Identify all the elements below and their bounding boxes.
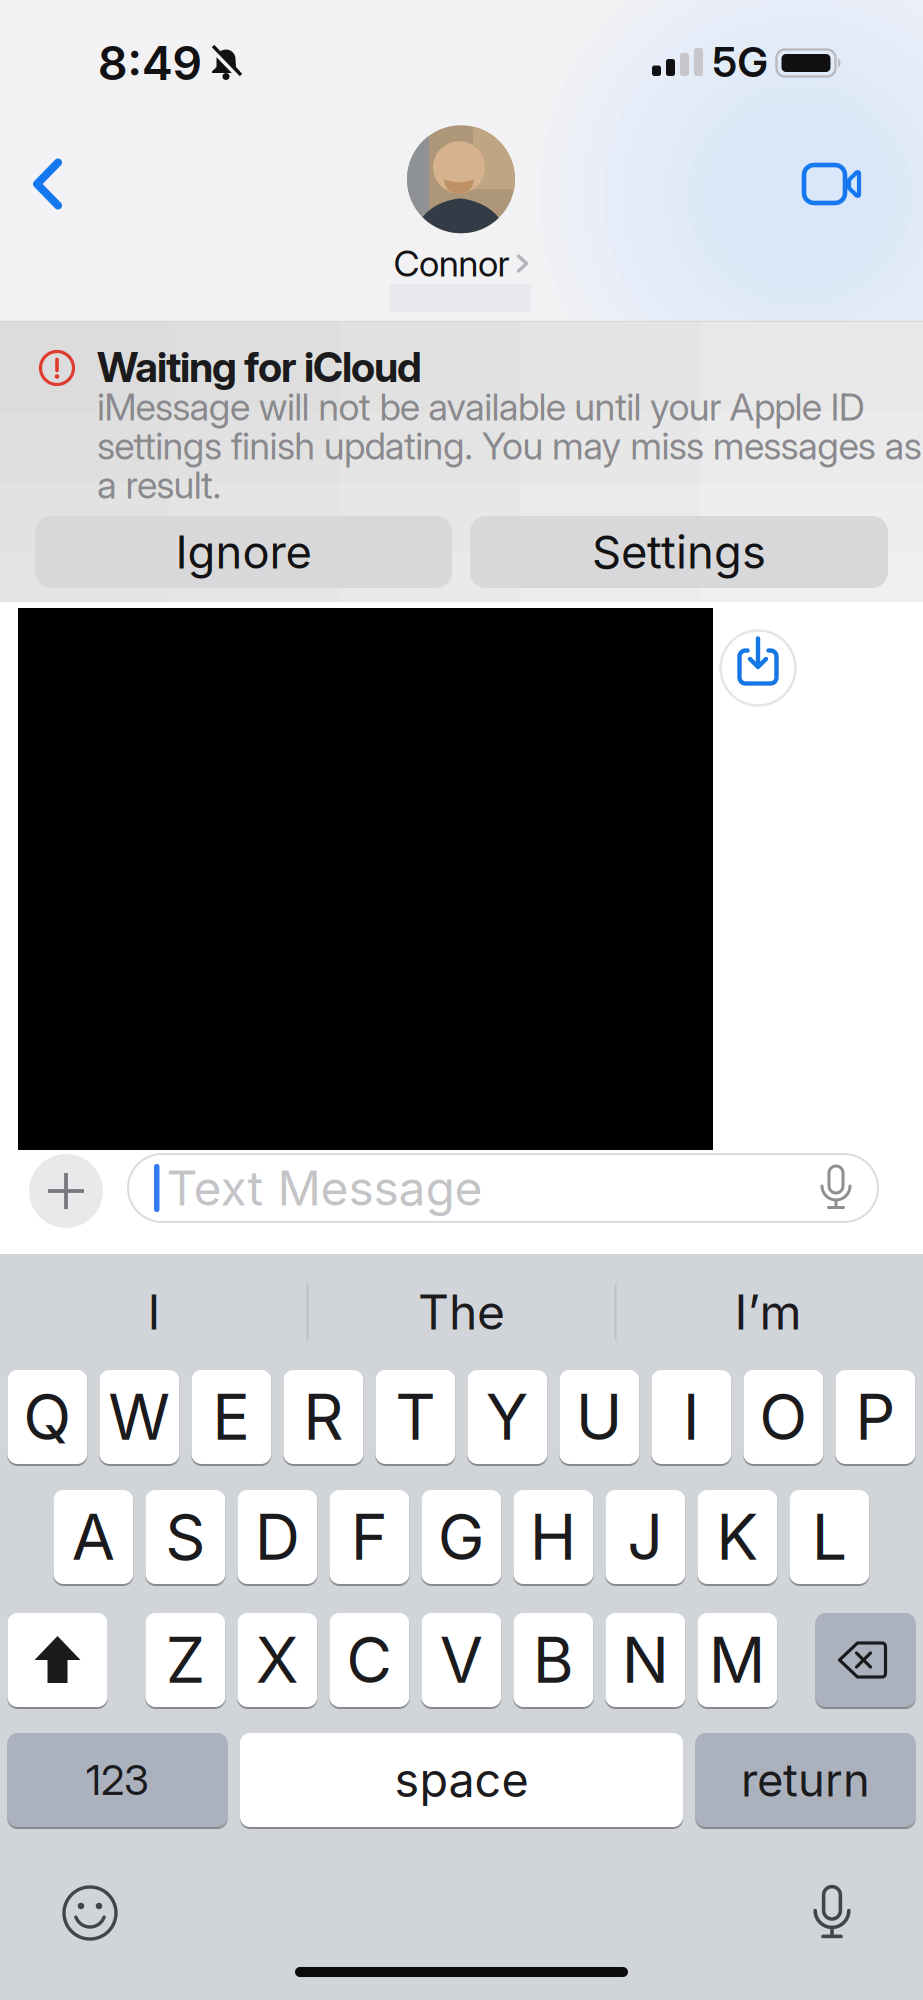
- staticText: I: [683, 1380, 700, 1454]
- button[interactable]: H: [513, 1490, 593, 1584]
- button[interactable]: Z: [145, 1613, 225, 1707]
- button[interactable]: Dictation: [812, 1885, 852, 1941]
- staticText: C: [346, 1623, 392, 1697]
- staticText: S: [165, 1500, 205, 1574]
- staticText: B: [533, 1623, 574, 1697]
- staticText: I: [147, 1284, 160, 1340]
- staticText: return: [741, 1753, 870, 1807]
- button[interactable]: Delete: [815, 1613, 915, 1707]
- button[interactable]: FaceTime: [802, 163, 862, 205]
- staticText: K: [716, 1500, 758, 1574]
- staticText: Z: [166, 1623, 205, 1697]
- staticText: Waiting for iCloud: [97, 343, 422, 391]
- staticText: L: [812, 1500, 847, 1574]
- button[interactable]: space: [240, 1733, 683, 1827]
- staticText: T: [395, 1380, 435, 1454]
- button[interactable]: F: [329, 1490, 409, 1584]
- staticText: 5G: [712, 38, 767, 86]
- button[interactable]: Add attachment: [29, 1154, 103, 1228]
- button[interactable]: Back: [32, 157, 64, 210]
- staticText: 123: [86, 1756, 149, 1804]
- button[interactable]: 123: [7, 1733, 227, 1827]
- staticText: R: [303, 1380, 343, 1454]
- button[interactable]: C: [329, 1613, 409, 1707]
- staticText: V: [440, 1623, 483, 1697]
- staticText: iMessage will not be available until you…: [97, 385, 865, 429]
- button[interactable]: The: [326, 1272, 596, 1352]
- staticText: N: [622, 1623, 669, 1697]
- staticText: Ignore: [175, 525, 311, 579]
- button[interactable]: Q: [7, 1370, 87, 1464]
- button[interactable]: J: [605, 1490, 685, 1584]
- button[interactable]: Shift: [7, 1613, 107, 1707]
- staticText: A: [72, 1500, 115, 1574]
- staticText: F: [351, 1500, 388, 1574]
- button[interactable]: O: [743, 1370, 823, 1464]
- button[interactable]: Emoji: [63, 1886, 117, 1940]
- button[interactable]: N: [605, 1613, 685, 1707]
- staticText: H: [530, 1500, 577, 1574]
- button[interactable]: U: [559, 1370, 639, 1464]
- staticText: Q: [23, 1380, 71, 1454]
- button[interactable]: D: [237, 1490, 317, 1584]
- button[interactable]: P: [835, 1370, 915, 1464]
- staticText: settings finish updating. You may miss m…: [97, 424, 922, 468]
- staticText: O: [759, 1380, 807, 1454]
- staticText: E: [212, 1380, 250, 1454]
- button[interactable]: Y: [467, 1370, 547, 1464]
- button[interactable]: T: [375, 1370, 455, 1464]
- button[interactable]: G: [421, 1490, 501, 1584]
- staticText: space: [394, 1752, 528, 1808]
- staticText: Settings: [592, 525, 766, 579]
- staticText: a result.: [97, 463, 221, 507]
- staticText: M: [709, 1623, 766, 1697]
- button[interactable]: V: [421, 1613, 501, 1707]
- staticText: P: [855, 1380, 895, 1454]
- staticText: The: [418, 1284, 505, 1340]
- staticText: G: [438, 1500, 485, 1574]
- button[interactable]: M: [697, 1613, 777, 1707]
- staticText: W: [108, 1380, 170, 1454]
- staticText: U: [576, 1380, 623, 1454]
- button[interactable]: R: [283, 1370, 363, 1464]
- button[interactable]: Text Message: [128, 1154, 878, 1222]
- button[interactable]: I: [651, 1370, 731, 1464]
- staticText: D: [255, 1500, 300, 1574]
- button[interactable]: Settings: [470, 516, 888, 588]
- button[interactable]: Connor: [393, 125, 528, 285]
- staticText: Y: [486, 1380, 529, 1454]
- button[interactable]: B: [513, 1613, 593, 1707]
- button[interactable]: return: [695, 1733, 915, 1827]
- button[interactable]: A: [53, 1490, 133, 1584]
- button[interactable]: Ignore: [35, 516, 452, 588]
- button[interactable]: X: [237, 1613, 317, 1707]
- staticText: X: [256, 1623, 299, 1697]
- button[interactable]: I’m: [633, 1272, 903, 1352]
- staticText: Text Message: [166, 1160, 482, 1216]
- button[interactable]: L: [789, 1490, 869, 1584]
- staticText: J: [627, 1500, 663, 1574]
- staticText: 8:49: [98, 35, 202, 91]
- button[interactable]: I: [19, 1272, 289, 1352]
- staticText: I’m: [734, 1284, 801, 1340]
- button[interactable]: W: [99, 1370, 179, 1464]
- staticText: Connor: [393, 242, 509, 285]
- button[interactable]: S: [145, 1490, 225, 1584]
- button[interactable]: Download: [720, 630, 795, 705]
- button[interactable]: K: [697, 1490, 777, 1584]
- button[interactable]: Dictate: [819, 1165, 853, 1211]
- button[interactable]: E: [191, 1370, 271, 1464]
